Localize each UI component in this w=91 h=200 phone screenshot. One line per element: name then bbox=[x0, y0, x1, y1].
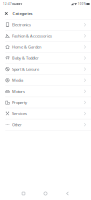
button[interactable]: Media bbox=[0, 75, 91, 86]
button[interactable]: Other bbox=[0, 119, 91, 130]
staticText: Sport & Leisure bbox=[12, 66, 39, 72]
staticText: Motors bbox=[12, 89, 25, 94]
button[interactable]: Motors bbox=[0, 86, 91, 97]
staticText: 100% bbox=[78, 2, 86, 6]
staticText: Fashion & Accessories bbox=[12, 33, 52, 38]
button[interactable]: Close bbox=[0, 8, 13, 19]
staticText: 12:47 bbox=[3, 2, 12, 6]
staticText: Other bbox=[12, 122, 22, 127]
staticText: Media bbox=[12, 78, 23, 83]
button[interactable]: Recents bbox=[12, 187, 34, 199]
staticText: Services bbox=[12, 111, 27, 116]
button[interactable]: Baby & Toddler bbox=[0, 53, 91, 64]
staticText: Property bbox=[12, 100, 27, 105]
button[interactable]: Services bbox=[0, 108, 91, 119]
staticText: Baby & Toddler bbox=[12, 55, 39, 61]
staticText: Home & Garden bbox=[12, 44, 41, 50]
button[interactable]: Home bbox=[34, 187, 56, 199]
staticText: Electronics bbox=[12, 22, 31, 27]
button[interactable]: Home & Garden bbox=[0, 42, 91, 53]
button[interactable]: Sport & Leisure bbox=[0, 64, 91, 75]
staticText: Categories bbox=[13, 11, 33, 16]
button[interactable]: Electronics bbox=[0, 19, 91, 30]
button[interactable]: Fashion & Accessories bbox=[0, 30, 91, 42]
button[interactable]: Back bbox=[56, 187, 78, 199]
button[interactable]: Property bbox=[0, 97, 91, 108]
